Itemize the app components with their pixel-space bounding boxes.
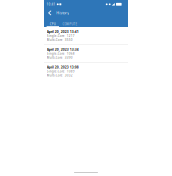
staticText: Multi-Core 3550 [47,38,73,42]
button[interactable]: Back [46,8,54,17]
staticText: Multi-Core 3032 [47,73,73,77]
button[interactable]: COMPUTE [59,17,81,27]
staticText: Single-Core 1068 [47,52,75,56]
button[interactable]: CPU [47,17,59,27]
button[interactable]: April 20, 2023 13:41 [44,27,128,44]
button[interactable]: April 20, 2023 13:34 [44,45,128,62]
staticText: Single-Core 1089 [47,69,75,73]
staticText: COMPUTE [63,22,78,26]
staticText: April 20, 2023 13:08 [47,65,79,69]
staticText: History [56,10,69,15]
staticText: April 20, 2023 13:41 [47,29,79,34]
button[interactable]: April 20, 2023 13:08 [44,62,128,80]
staticText: 10:41 [47,2,56,6]
staticText: April 20, 2023 13:34 [47,47,79,52]
staticText: Single-Core 1217 [47,34,75,38]
staticText: CPU [50,22,56,26]
staticText: Multi-Core 3390 [47,56,73,60]
